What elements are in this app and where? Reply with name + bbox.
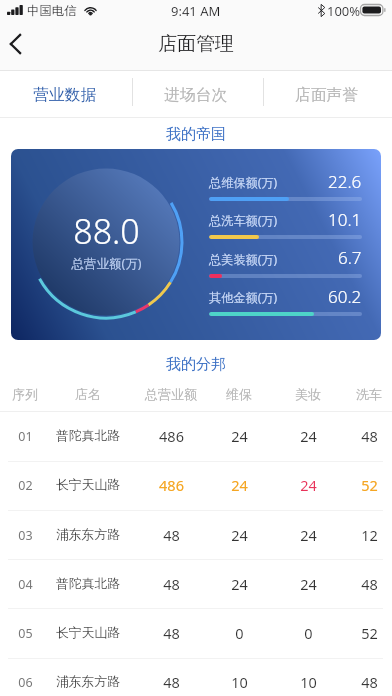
button[interactable]: 进场台次 xyxy=(130,71,261,118)
button[interactable]: Back xyxy=(0,23,42,65)
staticText: 52 xyxy=(361,475,378,495)
staticText: 24 xyxy=(231,426,248,446)
staticText: 48 xyxy=(361,672,378,692)
staticText: 长宁天山路 xyxy=(56,477,120,493)
staticText: 序列 xyxy=(12,386,38,402)
button[interactable] xyxy=(0,658,392,696)
staticText: 美妆 xyxy=(295,386,321,402)
staticText: 0 xyxy=(304,623,313,643)
staticText: 48 xyxy=(163,672,180,692)
staticText: 03 xyxy=(18,527,33,544)
staticText: 486 xyxy=(159,475,184,495)
staticText: 总洗车额(万) xyxy=(209,212,278,229)
button[interactable]: 营业数据 xyxy=(0,71,130,118)
staticText: 洗车 xyxy=(356,386,382,402)
staticText: 10.1 xyxy=(328,208,362,231)
staticText: 我的帝国 xyxy=(166,125,226,144)
button[interactable] xyxy=(0,559,392,608)
staticText: 24 xyxy=(231,574,248,594)
staticText: 总营业额 xyxy=(145,386,197,402)
staticText: 其他金额(万) xyxy=(209,289,278,306)
staticText: 9:41 AM xyxy=(171,2,221,20)
staticText: 24 xyxy=(300,475,317,495)
staticText: 04 xyxy=(18,576,33,593)
staticText: 24 xyxy=(300,426,317,446)
staticText: 普陀真北路 xyxy=(56,576,120,592)
staticText: 10 xyxy=(231,672,248,692)
staticText: 48 xyxy=(361,574,378,594)
staticText: 10 xyxy=(300,672,317,692)
staticText: 48 xyxy=(163,623,180,643)
staticText: 维保 xyxy=(226,386,252,402)
staticText: 24 xyxy=(300,574,317,594)
staticText: 总营业额(万) xyxy=(71,255,142,272)
button[interactable]: 店面声誉 xyxy=(261,71,392,118)
staticText: 12 xyxy=(361,525,378,545)
staticText: 486 xyxy=(159,426,184,446)
staticText: 店名 xyxy=(75,386,101,402)
staticText: 店面管理 xyxy=(158,32,234,56)
staticText: 浦东东方路 xyxy=(56,527,120,543)
staticText: 店面声誉 xyxy=(295,85,359,105)
button[interactable] xyxy=(0,608,392,657)
staticText: 48 xyxy=(163,525,180,545)
button[interactable] xyxy=(0,510,392,559)
staticText: 01 xyxy=(18,428,33,445)
staticText: 24 xyxy=(231,525,248,545)
staticText: 浦东东方路 xyxy=(56,674,120,690)
staticText: 88.0 xyxy=(73,208,140,254)
staticText: 06 xyxy=(18,674,33,691)
staticText: 52 xyxy=(361,623,378,643)
staticText: 100% xyxy=(327,2,361,20)
button[interactable]: 88.0 xyxy=(11,149,381,340)
staticText: 48 xyxy=(361,426,378,446)
button[interactable] xyxy=(0,461,392,510)
staticText: 48 xyxy=(163,574,180,594)
staticText: 22.6 xyxy=(328,170,362,193)
staticText: 我的分邦 xyxy=(166,355,226,374)
staticText: 02 xyxy=(18,477,33,494)
staticText: 总美装额(万) xyxy=(209,251,278,268)
staticText: 进场台次 xyxy=(164,85,228,105)
staticText: 05 xyxy=(18,625,33,642)
staticText: 营业数据 xyxy=(33,85,97,105)
staticText: 0 xyxy=(235,623,244,643)
staticText: 普陀真北路 xyxy=(56,428,120,444)
staticText: 24 xyxy=(231,475,248,495)
staticText: 60.2 xyxy=(328,285,362,308)
staticText: 长宁天山路 xyxy=(56,625,120,641)
staticText: 6.7 xyxy=(338,246,362,269)
staticText: 总维保额(万) xyxy=(209,174,278,191)
staticText: 24 xyxy=(300,525,317,545)
staticText: 中国电信 xyxy=(27,3,77,19)
button[interactable] xyxy=(0,412,392,461)
